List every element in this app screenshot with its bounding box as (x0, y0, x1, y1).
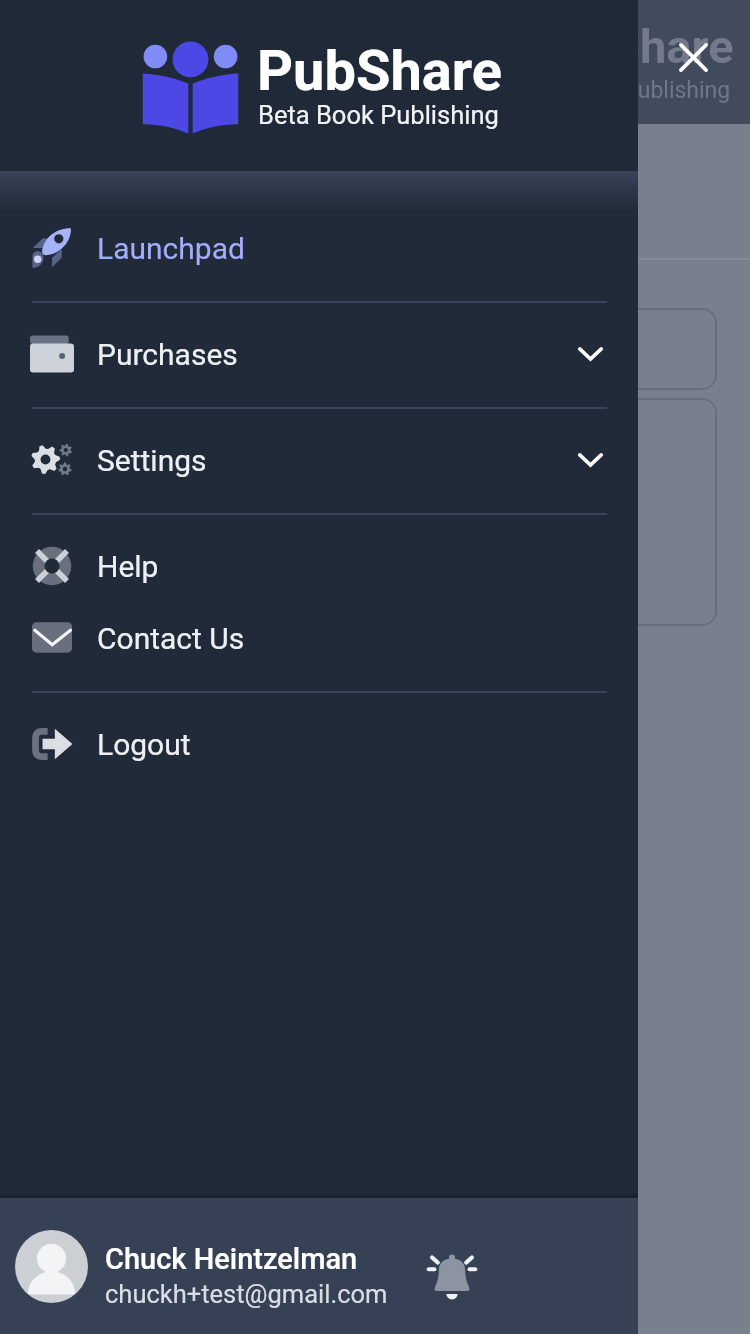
staticText: Settings (97, 443, 207, 478)
button[interactable]: Purchases (0, 318, 638, 390)
button[interactable] (0, 1198, 638, 1334)
staticText: Purchases (97, 337, 238, 372)
staticText: Chuck Heintzelman (105, 1242, 358, 1276)
staticText: Beta Book Publishing (513, 77, 731, 104)
staticText: chuckh+test@gmail.com (105, 1279, 388, 1309)
button[interactable]: Launchpad (0, 212, 638, 284)
staticText: PubShare (257, 38, 502, 104)
button[interactable]: Help (0, 530, 638, 602)
button[interactable]: Notifications (414, 1236, 490, 1312)
staticText: Logout (97, 727, 191, 762)
button[interactable]: Contact Us (0, 602, 638, 674)
staticText: Help (97, 549, 159, 584)
staticText: PubShare (528, 19, 734, 74)
staticText: Launchpad (97, 231, 245, 266)
staticText: Beta Book Publishing (258, 100, 499, 130)
staticText: Contact Us (97, 621, 245, 656)
button[interactable]: Logout (0, 708, 638, 780)
button[interactable]: Settings (0, 424, 638, 496)
button[interactable]: Close navigation drawer (656, 20, 730, 94)
